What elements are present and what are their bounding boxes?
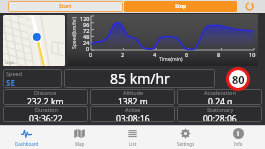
staticText: Legal (5, 60, 14, 65)
staticText: Stop (175, 3, 187, 10)
staticText: 4 (153, 51, 157, 58)
staticText: 03:36:22 (29, 113, 63, 122)
staticText: 0.24 g (208, 96, 233, 105)
staticText: 00:28:06 (203, 113, 237, 122)
button[interactable]: Distance (3, 89, 88, 105)
button[interactable]: Legal (3, 15, 65, 66)
button[interactable]: Dashboard (0, 126, 53, 149)
staticText: Dashboard (15, 141, 39, 147)
button[interactable]: Settings (159, 126, 212, 149)
button[interactable]: Reset (237, 1, 262, 12)
staticText: Acceleration (204, 89, 236, 96)
button[interactable]: Speed (3, 69, 62, 88)
staticText: List (129, 141, 137, 147)
staticText: 96 (83, 21, 90, 27)
staticText: 232.2 km (27, 96, 64, 105)
staticText: 0 (86, 45, 90, 51)
staticText: Speed(km/hr) (71, 17, 78, 49)
staticText: 8 (217, 51, 221, 58)
staticText: 80 (232, 72, 245, 87)
button[interactable]: Acceleration (177, 89, 262, 105)
button[interactable]: Start (8, 1, 123, 12)
staticText: SE (6, 77, 15, 88)
staticText: 24 (83, 39, 90, 45)
button[interactable]: Map (53, 126, 106, 149)
staticText: Duration (35, 106, 58, 113)
button[interactable]: 85 km/hr (64, 69, 215, 88)
staticText: 2 (121, 51, 125, 58)
staticText: Info (234, 141, 243, 147)
staticText: 48 (83, 33, 90, 39)
button[interactable]: i (212, 126, 265, 149)
staticText: 10 (249, 51, 256, 58)
staticText: Start (59, 3, 72, 10)
staticText: Map (75, 141, 85, 147)
button[interactable]: Altitude (90, 89, 175, 105)
button[interactable]: Active (90, 106, 175, 122)
staticText: Altitude (123, 89, 144, 96)
staticText: i (237, 129, 240, 139)
staticText: 1382 m (118, 96, 148, 105)
button[interactable]: Duration (3, 106, 88, 122)
button[interactable]: Stationary (177, 106, 262, 122)
staticText: Active (125, 106, 141, 113)
staticText: Distance (34, 89, 57, 96)
staticText: 6 (185, 51, 189, 58)
staticText: 120 (80, 15, 90, 21)
button[interactable]: List (106, 126, 159, 149)
staticText: Stationary (207, 106, 234, 113)
staticText: Time(min) (159, 56, 183, 63)
staticText: 0 (89, 51, 93, 58)
staticText: Settings (177, 141, 195, 147)
staticText: 72 (83, 27, 90, 33)
staticText: 03:08:16 (116, 113, 150, 122)
staticText: Speed (6, 70, 22, 77)
button[interactable]: Stop (124, 1, 237, 12)
staticText: 85 km/hr (110, 69, 170, 88)
button[interactable]: Speed limit 80 (229, 70, 247, 88)
